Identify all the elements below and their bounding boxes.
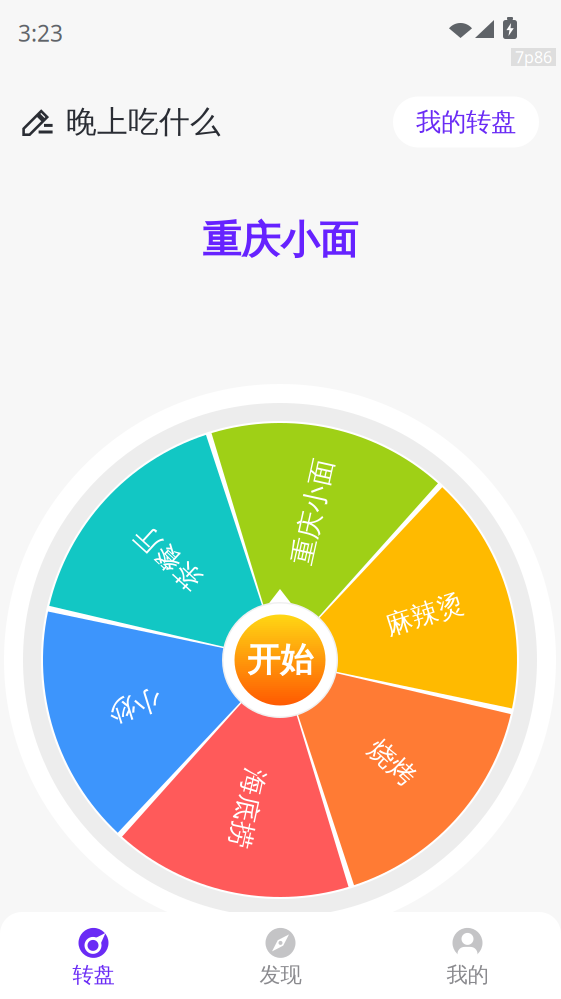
staticText: 开始 (247, 639, 313, 680)
staticText: 海底捞 (207, 792, 288, 825)
staticText: 晚上吃什么 (66, 103, 221, 141)
staticText: 小炒 (108, 689, 162, 722)
button[interactable]: 我的转盘 (393, 96, 539, 147)
staticText: 重庆小面 (259, 495, 367, 528)
staticText: 烧烤 (365, 746, 419, 779)
button[interactable]: 我的 (374, 912, 561, 999)
staticText: 我的 (446, 962, 488, 988)
staticText: 茶餐厅 (127, 541, 208, 574)
button[interactable]: 发现 (187, 912, 374, 999)
staticText: 重庆小面 (202, 216, 358, 264)
staticText: 3:23 (18, 18, 63, 48)
staticText: 发现 (259, 962, 301, 988)
staticText: 转盘 (72, 962, 114, 988)
button[interactable]: 转盘 (0, 912, 187, 999)
staticText: 麻辣烫 (384, 598, 465, 631)
staticText: 我的转盘 (416, 106, 516, 137)
staticText: 7p86 (515, 46, 552, 68)
